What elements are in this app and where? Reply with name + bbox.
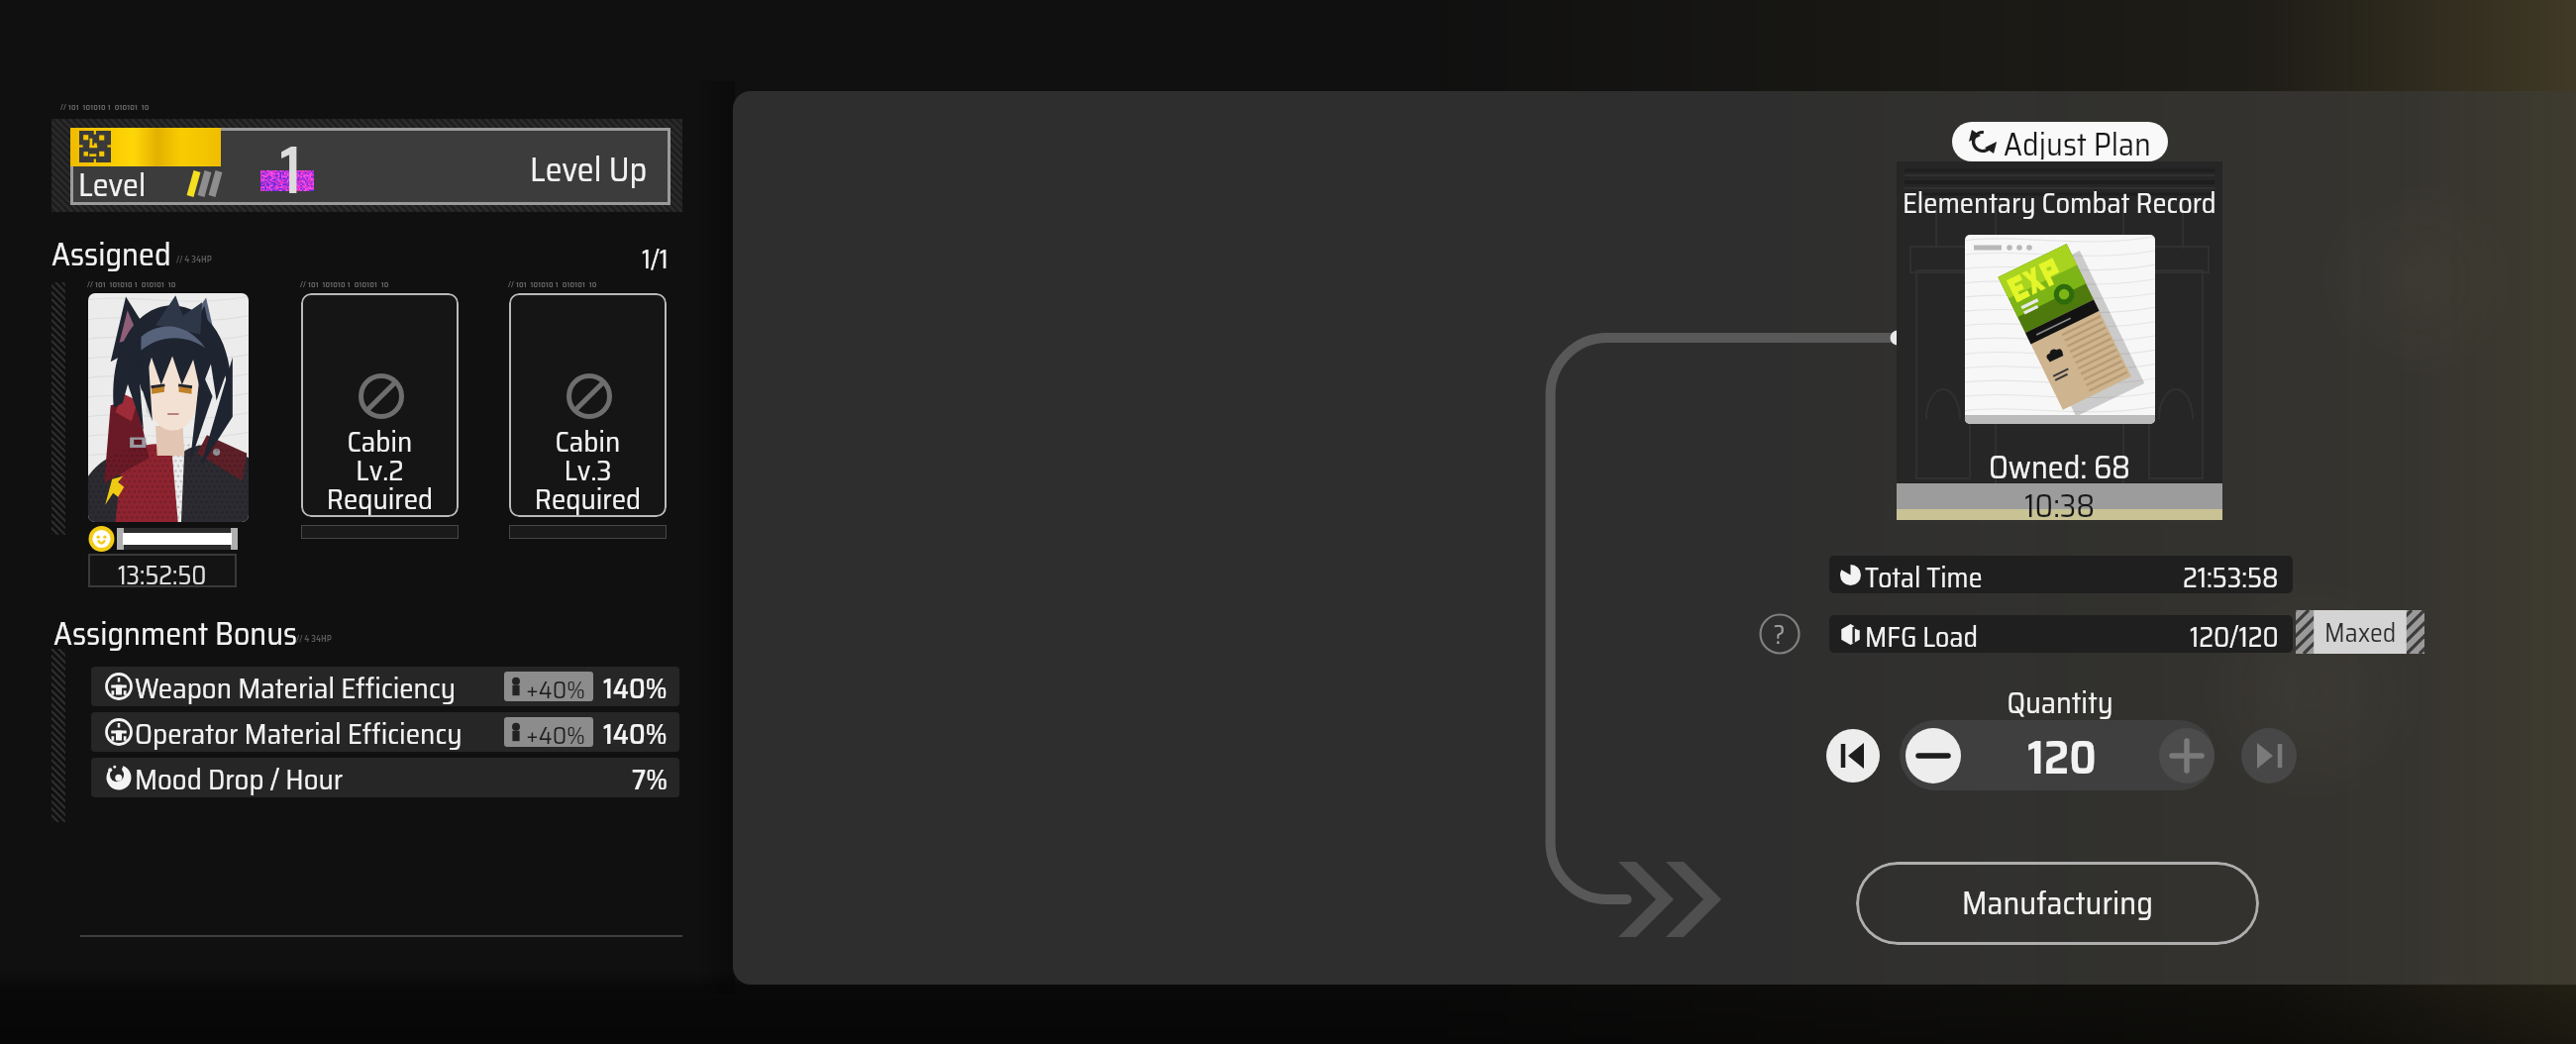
staticText: Quantity bbox=[1951, 679, 2169, 726]
staticText: // 101 101010 1 010101 10 bbox=[508, 278, 597, 291]
staticText: Cabin Lv.2 Required bbox=[301, 419, 459, 517]
button[interactable]: Adjust Plan bbox=[1952, 122, 2168, 161]
staticText: 7% bbox=[632, 758, 668, 796]
button[interactable]: Manufacturing bbox=[1856, 862, 2259, 945]
staticText: // 4 34HP bbox=[296, 632, 332, 646]
staticText: 13:52:50 bbox=[118, 555, 207, 584]
staticText: // 101 101010 1 010101 10 bbox=[60, 101, 150, 114]
staticText: 140% bbox=[603, 712, 668, 751]
staticText: 120 bbox=[2003, 720, 2121, 791]
button[interactable]: Cabin Lv.3 Required bbox=[509, 293, 667, 539]
button[interactable] bbox=[1965, 235, 2155, 424]
button[interactable]: Cabin Lv.2 Required bbox=[301, 293, 459, 539]
staticText: ? bbox=[1774, 614, 1786, 655]
staticText: // 101 101010 1 010101 10 bbox=[87, 278, 176, 291]
staticText: Total Time bbox=[1865, 556, 1983, 593]
staticText: Maxed bbox=[2324, 612, 2397, 653]
staticText: Assignment Bonus bbox=[53, 609, 298, 659]
staticText: +40% bbox=[526, 717, 585, 746]
staticText: // 101 101010 1 010101 10 bbox=[300, 278, 389, 291]
staticText: Operator Material Efficiency bbox=[135, 712, 463, 751]
staticText: Elementary Combat Record bbox=[1903, 181, 2216, 226]
staticText: Level bbox=[78, 160, 147, 210]
staticText: Adjust Plan bbox=[2004, 122, 2151, 159]
staticText: Owned: 68 bbox=[1989, 443, 2130, 492]
button[interactable]: Decrease bbox=[1906, 728, 1961, 783]
staticText: Manufacturing bbox=[1962, 879, 2153, 928]
button[interactable]: First page bbox=[1826, 729, 1880, 783]
button[interactable]: Increase bbox=[2159, 728, 2215, 783]
button[interactable]: Operator Material Efficiency bbox=[91, 712, 679, 752]
staticText: Level Up bbox=[530, 143, 648, 196]
button[interactable]: 13:52:50 bbox=[88, 293, 249, 587]
staticText: 21:53:58 bbox=[2183, 556, 2279, 593]
button[interactable]: MFG Load bbox=[1829, 615, 2293, 653]
staticText: Weapon Material Efficiency bbox=[135, 667, 457, 705]
button[interactable]: Weapon Material Efficiency bbox=[91, 667, 679, 706]
staticText: Cabin Lv.3 Required bbox=[509, 419, 667, 517]
staticText: 1/1 bbox=[642, 238, 669, 279]
button[interactable]: Help bbox=[1759, 613, 1801, 655]
button[interactable]: Last page bbox=[2241, 728, 2297, 783]
staticText: Mood Drop / Hour bbox=[135, 758, 344, 796]
staticText: 120/120 bbox=[2190, 615, 2279, 653]
staticText: 140% bbox=[603, 667, 668, 705]
button[interactable] bbox=[70, 128, 670, 205]
staticText: +40% bbox=[526, 672, 585, 700]
staticText: Assigned bbox=[52, 230, 171, 279]
staticText: 1 bbox=[279, 119, 302, 210]
button[interactable]: Total Time bbox=[1829, 556, 2293, 593]
staticText: // 4 34HP bbox=[176, 253, 212, 266]
staticText: 10:38 bbox=[2024, 481, 2096, 520]
button[interactable]: Mood Drop / Hour bbox=[91, 758, 679, 797]
staticText: MFG Load bbox=[1865, 615, 1979, 653]
